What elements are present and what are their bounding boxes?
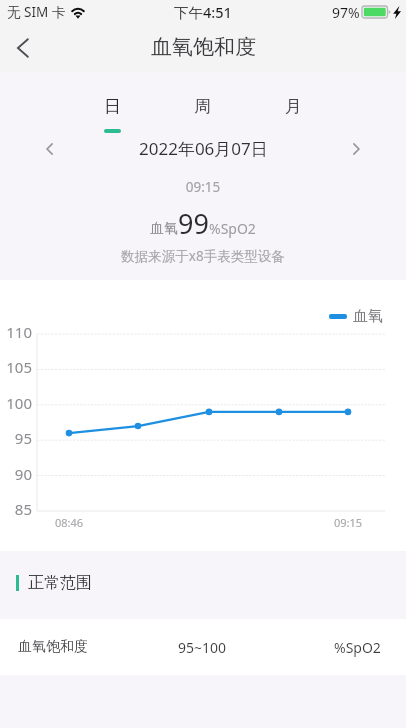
button[interactable]: Previous day — [32, 132, 68, 166]
staticText: 血氧 — [353, 307, 383, 326]
staticText: 09:15 — [0, 178, 406, 196]
staticText: 血氧 — [150, 220, 178, 238]
staticText: 105 — [2, 357, 32, 377]
staticText: 血氧饱和度 — [18, 638, 88, 656]
button[interactable]: 周 — [157, 96, 248, 133]
staticText: 97% — [332, 3, 360, 22]
staticText: 2022年06月07日 — [139, 137, 268, 160]
button[interactable]: Next day — [338, 132, 374, 166]
staticText: 周 — [194, 96, 211, 117]
staticText: 日 — [104, 96, 121, 117]
button[interactable]: 月 — [248, 96, 339, 133]
button[interactable]: 日 — [67, 96, 157, 133]
staticText: 90 — [2, 464, 32, 484]
staticText: 85 — [2, 499, 32, 519]
staticText: 月 — [285, 96, 302, 117]
staticText: 95 — [2, 428, 32, 448]
staticText: 数据来源于x8手表类型设备 — [0, 247, 406, 265]
button[interactable]: 血氧饱和度 — [0, 619, 406, 675]
staticText: %SpO2 — [209, 219, 256, 238]
staticText: 血氧饱和度 — [151, 34, 256, 60]
staticText: 95~100 — [178, 638, 227, 657]
staticText: 09:15 — [334, 515, 363, 530]
staticText: 99 — [178, 205, 209, 242]
staticText: 下午4:51 — [174, 2, 232, 22]
staticText: %SpO2 — [334, 638, 381, 657]
button[interactable]: Back — [1, 26, 45, 70]
staticText: 100 — [2, 393, 32, 413]
staticText: 正常范围 — [28, 573, 92, 593]
staticText: 110 — [2, 322, 32, 342]
staticText: 无 SIM 卡 — [7, 3, 66, 21]
staticText: 08:46 — [55, 515, 84, 530]
